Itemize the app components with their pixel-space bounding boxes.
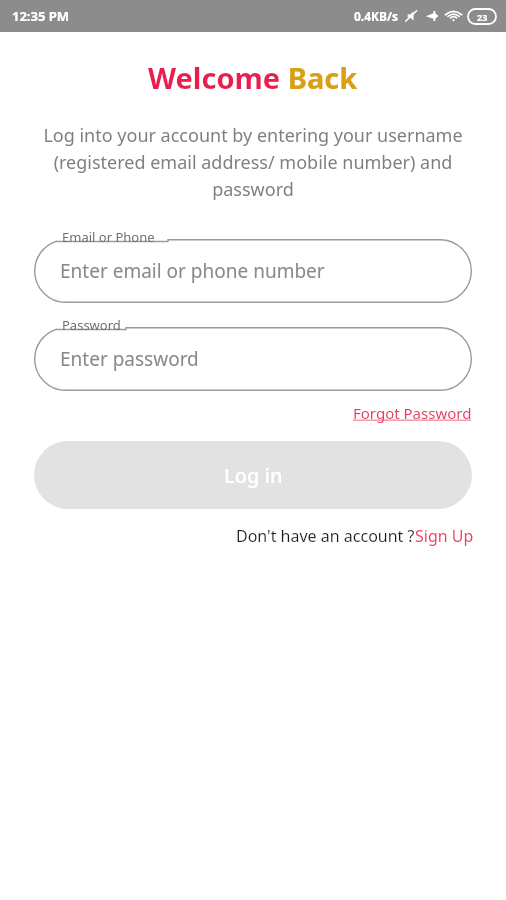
button[interactable]: Password [34, 315, 472, 391]
staticText: 12:35 PM [12, 7, 70, 25]
staticText: 0.4KB/s [354, 8, 399, 24]
button[interactable]: Email or Phone [34, 227, 472, 303]
staticText: Log in [224, 462, 283, 489]
staticText: Don't have an account ? [236, 525, 415, 547]
staticText: Welcome Back [148, 58, 358, 97]
staticText: Password [62, 316, 121, 334]
staticText: 23 [477, 11, 488, 23]
button[interactable]: Sign Up [415, 525, 474, 547]
staticText: Email or Phone [62, 228, 155, 246]
staticText: Enter password [60, 346, 199, 372]
button[interactable]: Log in [34, 441, 472, 509]
button[interactable]: Forgot Password [349, 399, 476, 427]
staticText: Enter email or phone number [60, 258, 325, 284]
staticText: Log into your account by entering your u… [28, 123, 478, 201]
